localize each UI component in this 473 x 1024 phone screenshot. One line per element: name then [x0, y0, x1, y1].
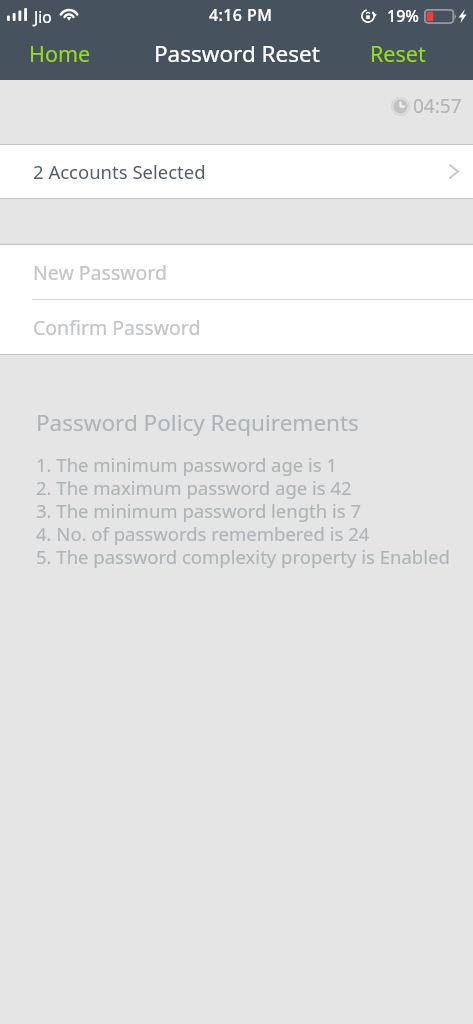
staticText: New Password: [33, 259, 168, 286]
staticText: Password Reset: [154, 38, 320, 69]
button[interactable]: Confirm Password: [0, 300, 473, 354]
staticText: Confirm Password: [33, 314, 201, 341]
button[interactable]: Home: [0, 31, 111, 76]
staticText: 19%: [387, 5, 419, 27]
staticText: Home: [29, 39, 91, 68]
staticText: 4:16 PM: [209, 4, 273, 26]
staticText: 2 Accounts Selected: [33, 159, 206, 184]
other: Rotation lock: [361, 9, 379, 23]
button[interactable]: Reset: [350, 31, 473, 76]
button[interactable]: 2 Accounts Selected: [0, 145, 473, 198]
staticText: 04:57: [413, 93, 462, 119]
button[interactable]: New Password: [0, 245, 473, 299]
staticText: Reset: [370, 39, 426, 68]
other: Open account list: [449, 164, 459, 179]
staticText: Jio: [34, 6, 52, 27]
staticText: 1. The minimum password age is 1 2. The …: [36, 452, 450, 569]
staticText: Password Policy Requirements: [36, 407, 359, 438]
